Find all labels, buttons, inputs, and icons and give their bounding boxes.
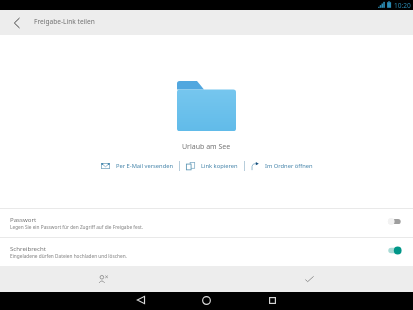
button[interactable]: Passwort: [0, 209, 413, 237]
staticText: 10:20: [394, 1, 411, 10]
staticText: Urlaub am See: [182, 142, 231, 152]
button[interactable]: Remove person: [0, 266, 206, 292]
button[interactable]: Back: [134, 293, 148, 307]
button[interactable]: Schreibrecht: [0, 238, 413, 266]
button[interactable]: Home: [199, 293, 213, 307]
button[interactable]: Recents: [265, 293, 279, 307]
staticText: Passwort: [10, 215, 37, 223]
staticText: Link kopieren: [201, 162, 238, 170]
button[interactable]: Per E-Mail versenden: [95, 159, 179, 173]
button[interactable]: Link kopieren: [180, 159, 244, 173]
staticText: Per E-Mail versenden: [116, 162, 173, 170]
staticText: Eingeladene dürfen Dateien hochladen und…: [10, 253, 127, 259]
staticText: Im Ordner öffnen: [265, 162, 313, 170]
staticText: Schreibrecht: [10, 244, 46, 252]
staticText: Freigabe-Link teilen: [34, 17, 95, 26]
button[interactable]: Im Ordner öffnen: [245, 159, 319, 173]
staticText: Legen Sie ein Passwort für den Zugriff a…: [10, 224, 143, 230]
button[interactable]: Back: [7, 10, 26, 35]
